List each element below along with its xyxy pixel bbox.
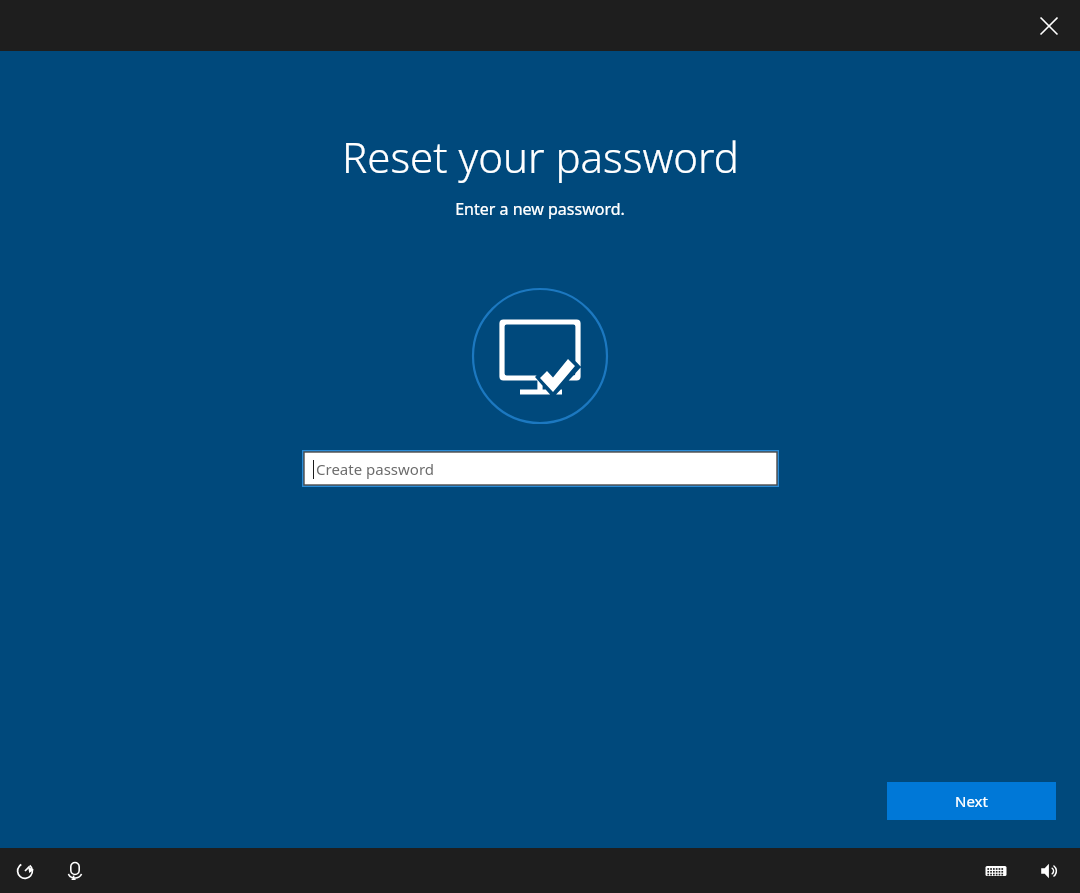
button[interactable]: Create password xyxy=(304,452,777,485)
staticText: Next xyxy=(955,791,988,811)
staticText: Enter a new password. xyxy=(455,198,625,220)
button[interactable]: Keyboard xyxy=(976,851,1016,891)
button[interactable]: Narrator xyxy=(56,852,94,890)
staticText: Create password xyxy=(316,459,435,479)
button[interactable]: Ease of access xyxy=(6,852,44,890)
button[interactable]: Volume xyxy=(1030,851,1070,891)
button[interactable]: Next xyxy=(887,782,1056,820)
button[interactable]: Close xyxy=(1026,4,1072,48)
staticText: Reset your password xyxy=(342,128,739,185)
